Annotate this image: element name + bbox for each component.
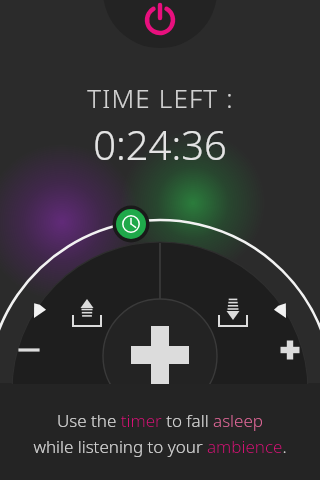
button[interactable]: Increase xyxy=(272,328,318,374)
staticText: Use the timer to fall asleep while liste… xyxy=(33,409,287,458)
button[interactable]: Upload xyxy=(67,293,107,333)
button[interactable]: Power xyxy=(132,0,188,56)
staticText: TIME LEFT : xyxy=(87,80,234,115)
button[interactable]: Decrease xyxy=(2,328,48,374)
button[interactable]: Download xyxy=(213,293,253,333)
staticText: 0:24:36 xyxy=(93,117,227,171)
button[interactable]: Add xyxy=(103,300,217,414)
button[interactable]: Timer xyxy=(112,205,150,243)
